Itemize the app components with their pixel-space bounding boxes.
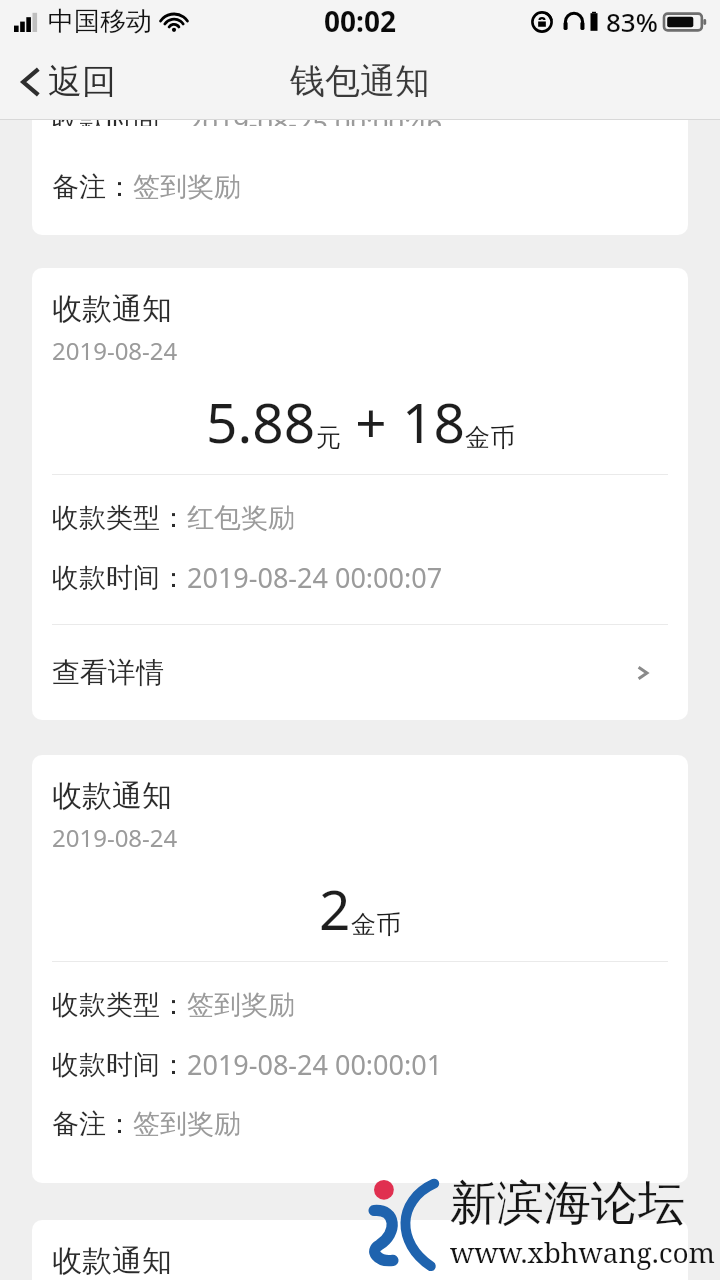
staticText: 查看详情 [52,655,164,690]
staticText: 收款时间： [52,561,187,595]
staticText: 新滨海论坛 [450,1174,685,1233]
button[interactable]: 收款通知 [32,755,688,1183]
staticText: 中国移动 [48,5,152,38]
staticText: www.xbhwang.com [450,1233,716,1271]
button[interactable]: 收款时间： [32,120,688,235]
staticText: 2019-08-24 [52,334,178,367]
button[interactable]: 收款通知 [32,1220,688,1280]
staticText: 收款类型： [52,501,187,535]
staticText: 2019-08-24 [52,821,178,854]
staticText: 签到奖励 [133,1107,241,1141]
staticText: 收款时间： [52,1048,187,1082]
staticText: 5.88 [206,384,316,459]
staticText: 备注： [52,170,133,204]
staticText: 签到奖励 [133,170,241,204]
staticText: 签到奖励 [187,988,295,1022]
staticText: 备注： [52,1107,133,1141]
staticText: 2019-08-24 00:00:07 [187,559,443,596]
staticText: 收款通知 [52,290,172,328]
button[interactable]: 查看详情 [32,625,688,720]
staticText: 元 [316,422,341,453]
staticText: 收款通知 [52,777,172,815]
staticText: 2019-08-25 00:00:46 [187,120,443,126]
staticText: 返回 [48,60,116,103]
staticText: 收款类型： [52,988,187,1022]
staticText: 18 [402,384,465,459]
staticText: 2019-08-24 00:00:01 [187,1046,443,1083]
staticText: 收款通知 [52,1242,172,1280]
staticText: 钱包通知 [290,59,430,103]
staticText: 00:02 [324,2,396,40]
staticText: + [341,384,402,459]
staticText: 2 [319,871,351,946]
button[interactable]: 返回 [0,52,130,111]
staticText: 金币 [465,422,515,453]
staticText: 金币 [351,909,401,940]
button[interactable]: 收款通知 [32,268,688,720]
staticText: 红包奖励 [187,501,295,535]
staticText: 83% [606,4,658,39]
staticText: 收款时间： [52,120,187,126]
other: 查看详情 [628,658,658,688]
